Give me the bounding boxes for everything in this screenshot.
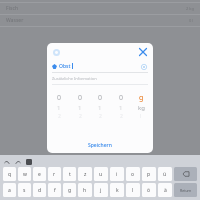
staticText: f: [54, 187, 56, 194]
staticText: 1: [78, 104, 82, 112]
button[interactable]: Clear text: [139, 62, 148, 71]
staticText: g: [68, 187, 72, 194]
button[interactable]: s: [18, 183, 31, 197]
button[interactable]: ü: [158, 167, 172, 181]
staticText: ü: [163, 171, 167, 178]
staticText: Zusätzliche Information: [52, 76, 97, 81]
staticText: 1: [98, 104, 102, 112]
button[interactable]: i: [110, 167, 124, 181]
staticText: e: [38, 171, 41, 178]
staticText: 0 l: [189, 18, 194, 23]
staticText: 2 kg: [186, 6, 194, 11]
button[interactable]: Paste: [24, 157, 33, 166]
button[interactable]: a: [3, 183, 16, 197]
staticText: g: [139, 93, 144, 103]
staticText: l: [140, 113, 142, 120]
button[interactable]: Close: [136, 45, 149, 58]
button[interactable]: f: [48, 183, 61, 197]
button[interactable]: 0: [73, 93, 87, 120]
staticText: k: [116, 187, 119, 194]
button[interactable]: Obst: [47, 60, 153, 72]
staticText: q: [8, 171, 12, 178]
button[interactable]: q: [3, 167, 16, 181]
staticText: a: [8, 187, 11, 194]
staticText: w: [23, 171, 27, 178]
staticText: Return: [180, 188, 192, 193]
staticText: 0: [78, 93, 83, 103]
staticText: Obst: [59, 63, 71, 70]
button[interactable]: j: [94, 183, 108, 197]
staticText: d: [38, 187, 42, 194]
staticText: 0: [119, 93, 124, 103]
button[interactable]: Category icon: [51, 47, 61, 57]
staticText: 0: [57, 93, 62, 103]
staticText: ö: [147, 187, 151, 194]
staticText: 1: [57, 104, 61, 112]
staticText: t: [69, 171, 71, 178]
staticText: 2: [58, 113, 61, 120]
staticText: o: [131, 171, 135, 178]
staticText: s: [23, 187, 26, 194]
button[interactable]: p: [142, 167, 156, 181]
staticText: ä: [164, 187, 167, 194]
staticText: p: [147, 171, 151, 178]
button[interactable]: Return: [174, 183, 197, 197]
staticText: r: [53, 171, 56, 178]
button[interactable]: Redo: [13, 157, 22, 166]
button[interactable]: l: [126, 183, 140, 197]
staticText: j: [100, 187, 102, 194]
button[interactable]: ö: [142, 183, 156, 197]
button[interactable]: Speichern: [47, 137, 153, 153]
staticText: Wasser: [6, 17, 24, 24]
staticText: u: [99, 171, 103, 178]
staticText: 2: [79, 113, 82, 120]
staticText: i: [116, 171, 118, 178]
button[interactable]: 0: [52, 93, 66, 120]
staticText: Speichern: [88, 142, 112, 149]
button[interactable]: t: [63, 167, 76, 181]
button[interactable]: Undo: [2, 157, 11, 166]
button[interactable]: o: [126, 167, 140, 181]
button[interactable]: h: [78, 183, 92, 197]
staticText: h: [83, 187, 87, 194]
button[interactable]: Backspace: [174, 167, 197, 181]
button[interactable]: ä: [158, 183, 172, 197]
staticText: 0: [98, 93, 103, 103]
button[interactable]: k: [110, 183, 124, 197]
button[interactable]: r: [48, 167, 61, 181]
staticText: z: [84, 171, 87, 178]
staticText: 2: [99, 113, 102, 120]
staticText: 2: [120, 113, 123, 120]
button[interactable]: 0: [114, 93, 128, 120]
button[interactable]: u: [94, 167, 108, 181]
staticText: kg: [138, 104, 145, 112]
button[interactable]: z: [78, 167, 92, 181]
staticText: Fisch: [6, 5, 19, 12]
button[interactable]: g: [134, 93, 148, 120]
button[interactable]: Zusätzliche Information: [47, 73, 153, 84]
button[interactable]: e: [33, 167, 46, 181]
button[interactable]: w: [18, 167, 31, 181]
button[interactable]: 0: [93, 93, 107, 120]
staticText: l: [132, 187, 134, 194]
button[interactable]: g: [63, 183, 76, 197]
staticText: 1: [119, 104, 123, 112]
button[interactable]: d: [33, 183, 46, 197]
